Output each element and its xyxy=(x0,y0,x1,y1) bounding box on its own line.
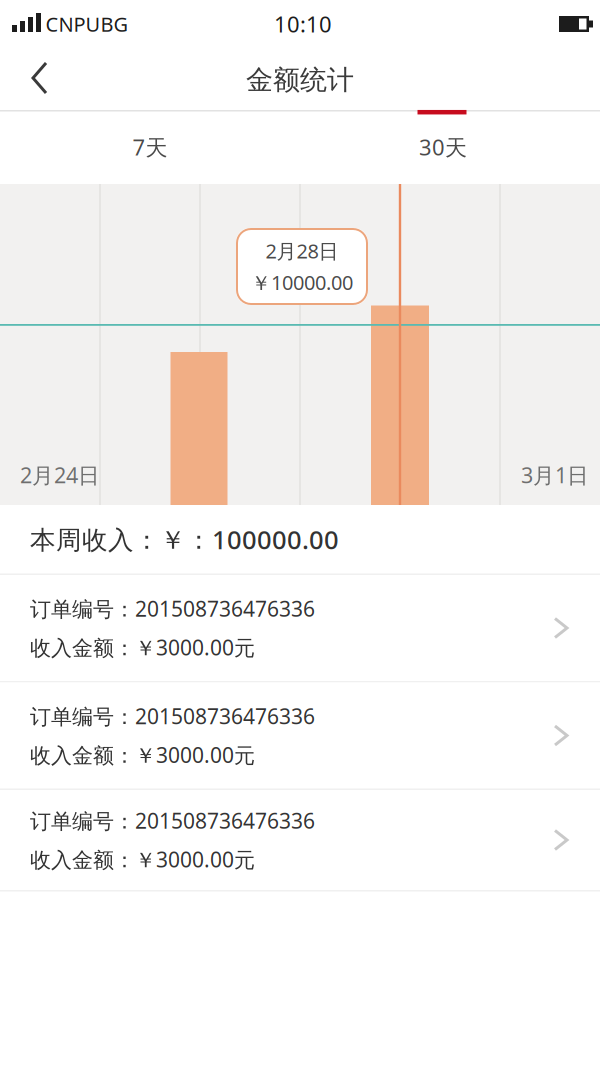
staticText: 订单编号：201508736476336 xyxy=(30,595,315,622)
staticText: 10:10 xyxy=(274,9,332,39)
button[interactable]: 7天 xyxy=(0,110,300,184)
staticText: 收入金额：￥3000.00元 xyxy=(30,741,255,769)
button[interactable]: 30天 xyxy=(300,110,600,184)
button[interactable]: 订单编号：201508736476336 xyxy=(0,790,600,890)
staticText: 订单编号：201508736476336 xyxy=(30,702,315,730)
staticText: 2月24日 xyxy=(20,461,100,489)
staticText: ￥10000.00 xyxy=(251,269,353,296)
button[interactable]: Back xyxy=(0,46,76,110)
staticText: CNPUBG xyxy=(45,11,128,37)
staticText: 订单编号：201508736476336 xyxy=(30,807,315,834)
staticText: 金额统计 xyxy=(246,63,354,97)
staticText: 收入金额：￥3000.00元 xyxy=(30,845,255,873)
button[interactable]: 订单编号：201508736476336 xyxy=(0,575,600,681)
staticText: 7天 xyxy=(132,132,167,162)
staticText: 本周收入：￥：100000.00 xyxy=(30,522,339,556)
staticText: 3月1日 xyxy=(521,461,589,489)
staticText: 2月28日 xyxy=(265,237,338,264)
staticText: 30天 xyxy=(419,132,467,162)
staticText: 收入金额：￥3000.00元 xyxy=(30,633,255,661)
button[interactable]: 订单编号：201508736476336 xyxy=(0,682,600,788)
